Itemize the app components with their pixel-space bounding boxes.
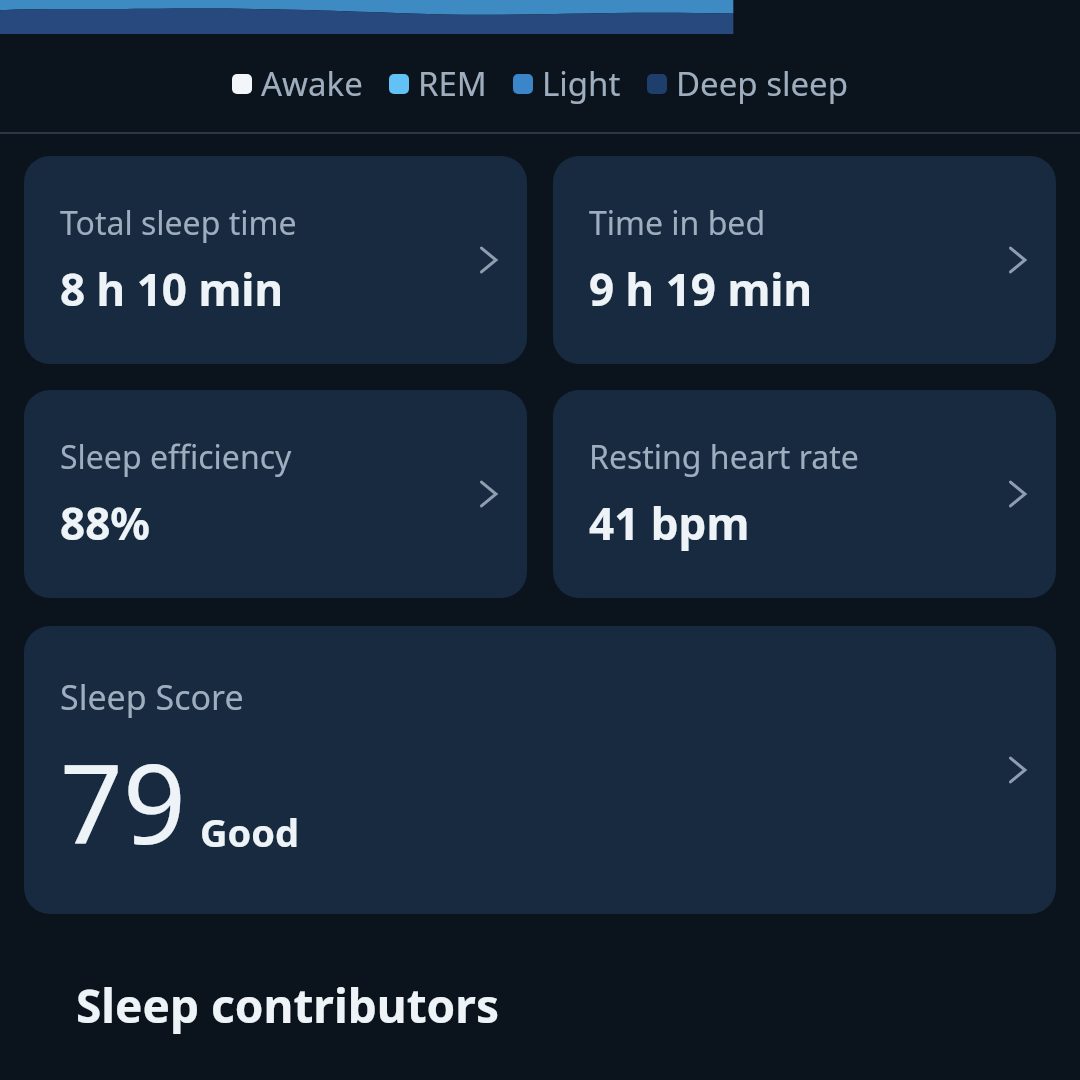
staticText: Deep sleep — [676, 61, 849, 106]
staticText: 88% — [60, 493, 151, 553]
staticText: Sleep efficiency — [60, 435, 292, 479]
staticText: Resting heart rate — [589, 435, 859, 479]
staticText: Sleep contributors — [76, 974, 500, 1037]
staticText: Awake — [261, 61, 363, 106]
staticText: Light — [542, 61, 621, 106]
button[interactable]: Sleep Score — [24, 626, 1056, 914]
staticText: 79 — [60, 726, 186, 876]
button[interactable]: Total sleep time — [24, 156, 527, 364]
button[interactable]: Sleep efficiency — [24, 390, 527, 598]
staticText: 8 h 10 min — [60, 259, 284, 319]
staticText: Time in bed — [589, 201, 766, 245]
staticText: REM — [418, 61, 487, 106]
button[interactable]: Resting heart rate — [553, 390, 1056, 598]
staticText: Total sleep time — [60, 201, 297, 245]
staticText: Sleep Score — [60, 674, 244, 720]
staticText: Good — [200, 806, 300, 858]
staticText: 41 bpm — [589, 493, 750, 553]
staticText: 9 h 19 min — [589, 259, 813, 319]
button[interactable]: Time in bed — [553, 156, 1056, 364]
